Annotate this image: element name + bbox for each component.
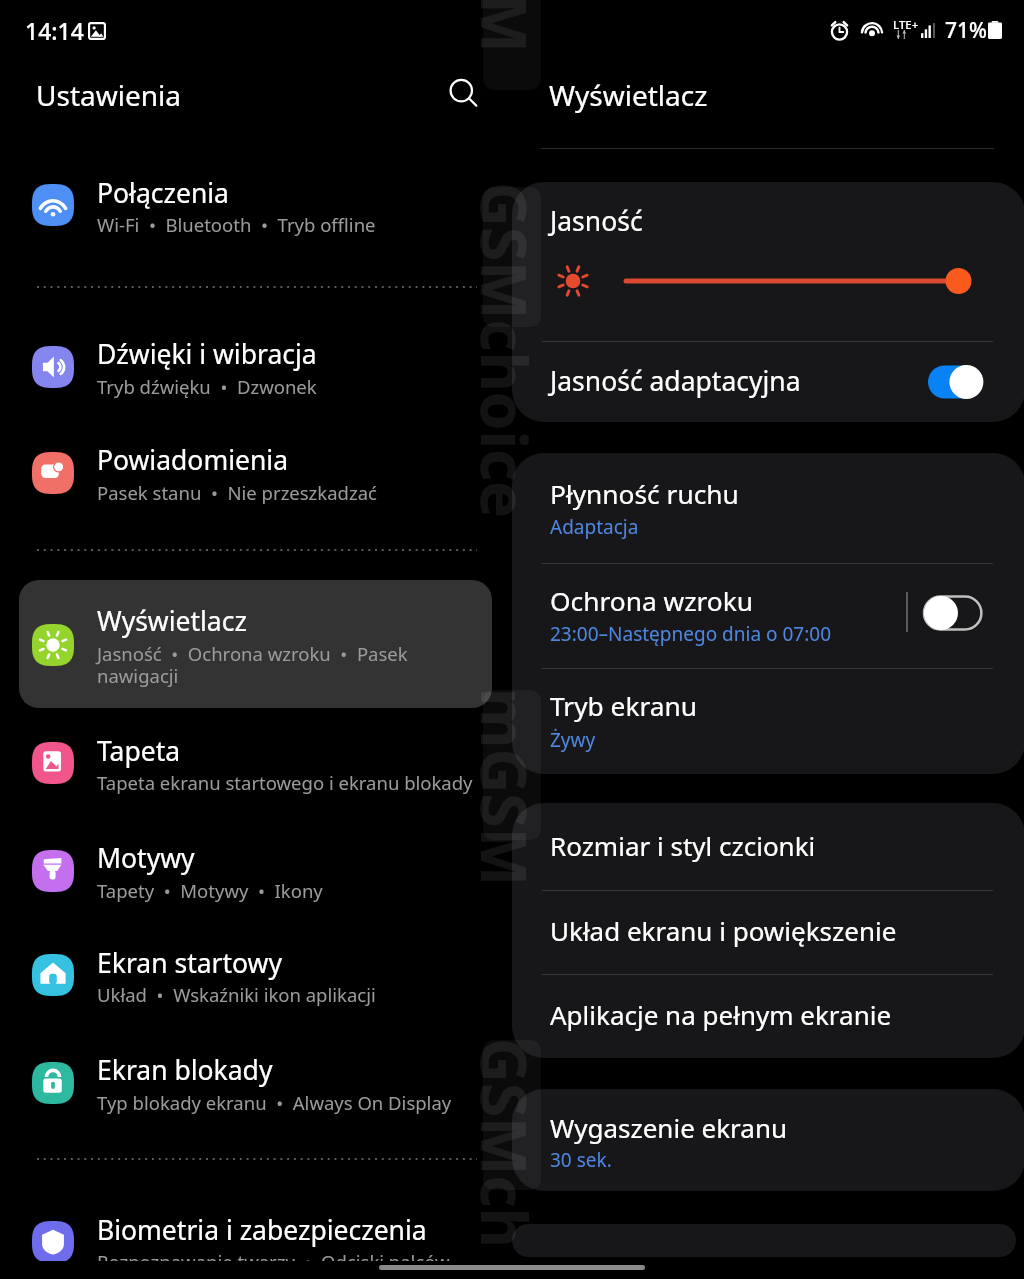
- staticText: mGSM: [477, 688, 547, 886]
- staticText: Tapeta: [97, 733, 181, 769]
- staticText: Tryb ekranu: [550, 688, 698, 724]
- staticText: GSMch: [477, 1038, 547, 1248]
- staticText: Wygaszenie ekranu: [550, 1110, 788, 1145]
- staticText: Wyświetlacz: [549, 76, 708, 114]
- staticText: Połączenia: [97, 175, 229, 211]
- button[interactable]: [512, 1089, 1024, 1191]
- staticText: Tapety • Motywy • Ikony: [97, 878, 323, 903]
- staticText: Motywy: [97, 840, 195, 876]
- staticText: Rozpoznawanie twarzy • Odciski palców: [97, 1249, 450, 1274]
- button[interactable]: [512, 803, 1024, 889]
- staticText: 30 sek.: [550, 1147, 612, 1173]
- staticText: Biometria i zabezpieczenia: [97, 1212, 427, 1248]
- button[interactable]: [512, 669, 1024, 774]
- staticText: LTE+: [893, 17, 919, 33]
- staticText: 14:14: [25, 15, 84, 46]
- staticText: Rozmiar i styl czcionki: [550, 828, 816, 863]
- staticText: Adaptacja: [550, 514, 639, 540]
- staticText: Jasność • Ochrona wzroku • Pasek nawigac…: [97, 641, 417, 689]
- button[interactable]: [0, 156, 492, 250]
- staticText: Ekran startowy: [97, 945, 282, 981]
- button[interactable]: Wyłącz: [924, 361, 990, 403]
- staticText: Jasność adaptacyjna: [550, 363, 801, 399]
- button[interactable]: [512, 453, 1024, 562]
- button[interactable]: [512, 890, 1024, 974]
- staticText: Typ blokady ekranu • Always On Display: [97, 1090, 452, 1115]
- button[interactable]: [0, 423, 492, 517]
- staticText: Żywy: [550, 727, 596, 753]
- staticText: Dźwięki i wibracja: [97, 336, 317, 372]
- staticText: Pasek stanu • Nie przeszkadzać: [97, 480, 377, 505]
- button[interactable]: Włącz: [920, 592, 986, 634]
- button[interactable]: [19, 580, 492, 708]
- staticText: Ustawienia: [36, 76, 181, 114]
- staticText: Układ ekranu i powiększenie: [550, 913, 897, 948]
- staticText: Układ • Wskaźniki ikon aplikacji: [97, 982, 376, 1007]
- staticText: Ekran blokady: [97, 1052, 273, 1088]
- staticText: SM: [477, 0, 547, 53]
- staticText: GSMchoice: [477, 182, 547, 519]
- staticText: Tapeta ekranu startowego i ekranu blokad…: [97, 770, 473, 795]
- button[interactable]: [0, 318, 492, 412]
- staticText: 71%: [945, 16, 987, 45]
- button[interactable]: [512, 563, 1024, 668]
- button[interactable]: [0, 821, 492, 915]
- button[interactable]: [0, 714, 492, 808]
- staticText: 23:00–Następnego dnia o 07:00: [550, 621, 832, 647]
- staticText: Ochrona wzroku: [550, 583, 754, 619]
- button[interactable]: [512, 975, 1024, 1058]
- button[interactable]: [0, 926, 492, 1020]
- staticText: Wi-Fi • Bluetooth • Tryb offline: [97, 212, 376, 237]
- staticText: Aplikacje na pełnym ekranie: [550, 997, 892, 1032]
- button[interactable]: [0, 1193, 492, 1279]
- button[interactable]: [0, 1033, 492, 1127]
- staticText: Jasność: [550, 203, 643, 239]
- staticText: Wyświetlacz: [97, 603, 247, 639]
- button[interactable]: [512, 341, 1024, 422]
- staticText: Powiadomienia: [97, 442, 289, 478]
- staticText: Tryb dźwięku • Dzwonek: [97, 374, 317, 399]
- staticText: Płynność ruchu: [550, 476, 739, 512]
- button[interactable]: Szukaj: [440, 70, 488, 118]
